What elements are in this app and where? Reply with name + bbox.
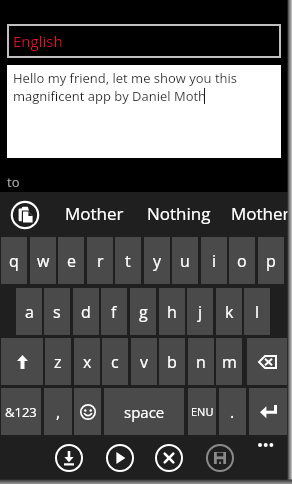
staticText: x — [83, 351, 92, 373]
button[interactable]: Shift — [1, 338, 43, 385]
button[interactable]: d — [73, 288, 99, 335]
button[interactable]: x — [74, 338, 100, 385]
button[interactable]: b — [159, 338, 185, 385]
button[interactable]: Emoji — [74, 388, 101, 435]
button[interactable]: &123 — [1, 388, 41, 435]
button[interactable]: space — [104, 388, 184, 435]
staticText: ENU — [191, 404, 214, 419]
staticText: d — [81, 301, 91, 323]
button[interactable]: m — [216, 338, 242, 385]
button[interactable]: n — [188, 338, 214, 385]
staticText: e — [67, 250, 76, 272]
staticText: t — [125, 250, 131, 272]
button[interactable]: z — [45, 338, 71, 385]
button[interactable]: w — [30, 237, 56, 284]
button[interactable]: Play — [105, 443, 135, 473]
staticText: space — [124, 402, 165, 422]
button[interactable]: u — [172, 237, 198, 284]
button[interactable]: More options — [252, 435, 286, 457]
staticText: . — [230, 401, 235, 423]
staticText: v — [140, 351, 148, 373]
button[interactable]: e — [58, 237, 84, 284]
staticText: l — [255, 301, 260, 323]
staticText: i — [212, 250, 217, 272]
button[interactable]: Cancel — [154, 443, 184, 473]
button[interactable]: Hello my friend, let me show you this ma… — [7, 65, 281, 158]
button[interactable]: Nothing — [147, 202, 211, 225]
staticText: a — [25, 301, 34, 323]
staticText: p — [266, 250, 276, 272]
button[interactable]: Mother — [231, 202, 290, 225]
button[interactable]: k — [216, 288, 242, 335]
button[interactable]: t — [115, 237, 141, 284]
staticText: f — [111, 301, 117, 323]
button[interactable]: j — [187, 288, 213, 335]
staticText: q — [9, 250, 19, 272]
staticText: r — [97, 250, 104, 272]
button[interactable]: i — [201, 237, 227, 284]
button[interactable]: Backspace — [247, 338, 287, 385]
button[interactable]: h — [159, 288, 185, 335]
button[interactable]: r — [87, 237, 113, 284]
staticText: g — [139, 301, 148, 323]
staticText: j — [198, 301, 203, 323]
staticText: to — [7, 173, 20, 191]
button[interactable]: Paste — [10, 200, 40, 230]
staticText: k — [225, 301, 234, 323]
staticText: n — [196, 351, 206, 373]
staticText: &123 — [5, 403, 37, 421]
button[interactable]: p — [258, 237, 284, 284]
button[interactable]: English — [7, 24, 281, 58]
staticText: s — [53, 301, 61, 323]
button[interactable]: q — [1, 237, 27, 284]
staticText: c — [111, 351, 119, 373]
button[interactable]: s — [44, 288, 70, 335]
staticText: , — [56, 401, 61, 423]
staticText: u — [180, 250, 190, 272]
button[interactable]: v — [131, 338, 157, 385]
staticText: m — [222, 351, 237, 373]
button[interactable]: ENU — [188, 388, 216, 435]
button[interactable]: g — [130, 288, 156, 335]
staticText: y — [153, 250, 162, 272]
staticText: English — [13, 31, 63, 51]
button[interactable]: a — [16, 288, 42, 335]
button[interactable]: Download — [54, 443, 84, 473]
button[interactable]: . — [219, 388, 246, 435]
staticText: Hello my friend, let me show you this ma… — [13, 69, 238, 105]
button[interactable]: f — [101, 288, 127, 335]
staticText: o — [237, 250, 247, 272]
button[interactable]: , — [44, 388, 72, 435]
staticText: b — [167, 351, 177, 373]
button[interactable]: Mother — [65, 202, 124, 225]
staticText: h — [167, 301, 177, 323]
button[interactable]: l — [244, 288, 270, 335]
button[interactable]: Save — [205, 443, 235, 473]
button[interactable]: y — [144, 237, 170, 284]
button[interactable]: Enter — [249, 388, 287, 435]
staticText: z — [54, 351, 62, 373]
staticText: w — [37, 250, 50, 272]
button[interactable]: c — [102, 338, 128, 385]
button[interactable]: o — [229, 237, 255, 284]
